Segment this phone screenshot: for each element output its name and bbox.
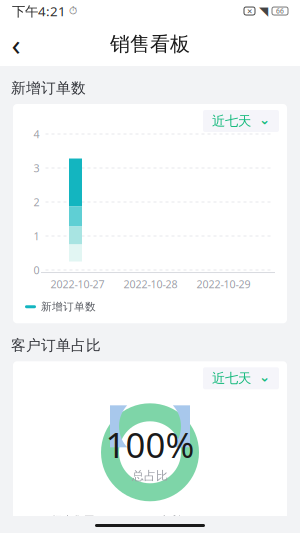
staticText: 2022-10-27 <box>50 277 104 291</box>
staticText: ⏱ <box>69 6 77 16</box>
staticText: 66 <box>276 7 284 15</box>
staticText: ⌄ <box>259 369 270 384</box>
staticText: ⌄ <box>259 112 270 127</box>
staticText: 2022-10-29 <box>196 277 250 291</box>
staticText: 近七天 <box>212 370 251 386</box>
staticText: 总占比 <box>132 468 168 483</box>
button[interactable]: 近七天 <box>203 367 279 389</box>
staticText: 新增订单数 <box>41 300 96 313</box>
staticText: 下午4:21 <box>12 2 66 20</box>
staticText: 50% <box>100 513 121 527</box>
staticText: 4 <box>33 127 39 141</box>
staticText: 吉利 <box>159 514 181 527</box>
staticText: 销售看板 <box>110 32 190 56</box>
staticText: 领克集团 <box>51 514 95 527</box>
staticText: 近七天 <box>212 113 251 129</box>
button[interactable]: Back <box>0 24 32 64</box>
staticText: 3 <box>33 161 39 175</box>
staticText: 客户订单占比 <box>11 336 101 354</box>
staticText: 2 <box>33 195 39 209</box>
staticText: 0 <box>33 263 39 277</box>
staticText: 2022-10-28 <box>123 277 177 291</box>
button[interactable]: 近七天 <box>203 110 279 132</box>
staticText: ◥ <box>259 4 268 18</box>
staticText: 1 <box>33 229 39 243</box>
staticText: 37.5% <box>186 513 216 527</box>
staticText: 100% <box>105 421 194 467</box>
staticText: 新增订单数 <box>11 79 86 97</box>
staticText: ‹ <box>11 24 20 63</box>
staticText: × <box>247 5 252 17</box>
